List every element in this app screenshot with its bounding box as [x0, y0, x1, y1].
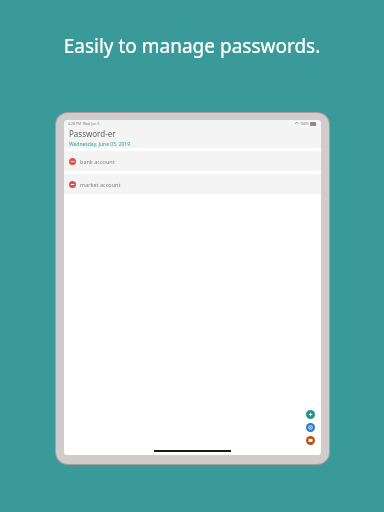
staticText: Password-er	[69, 128, 116, 139]
button[interactable]: Settings	[306, 423, 315, 432]
staticText: 4:28 PM Wed Jun 5	[68, 121, 100, 126]
button[interactable]: bank account	[64, 151, 321, 171]
staticText: market account	[80, 181, 121, 188]
staticText: 100%	[300, 121, 309, 126]
staticText: bank account	[80, 158, 115, 165]
button[interactable]: Add password	[306, 410, 315, 419]
staticText: Wednesday, June 05, 2019	[69, 141, 131, 148]
button[interactable]: market account	[64, 174, 321, 194]
button[interactable]: Share	[306, 436, 315, 445]
staticText: Easily to manage passwords.	[0, 33, 384, 59]
